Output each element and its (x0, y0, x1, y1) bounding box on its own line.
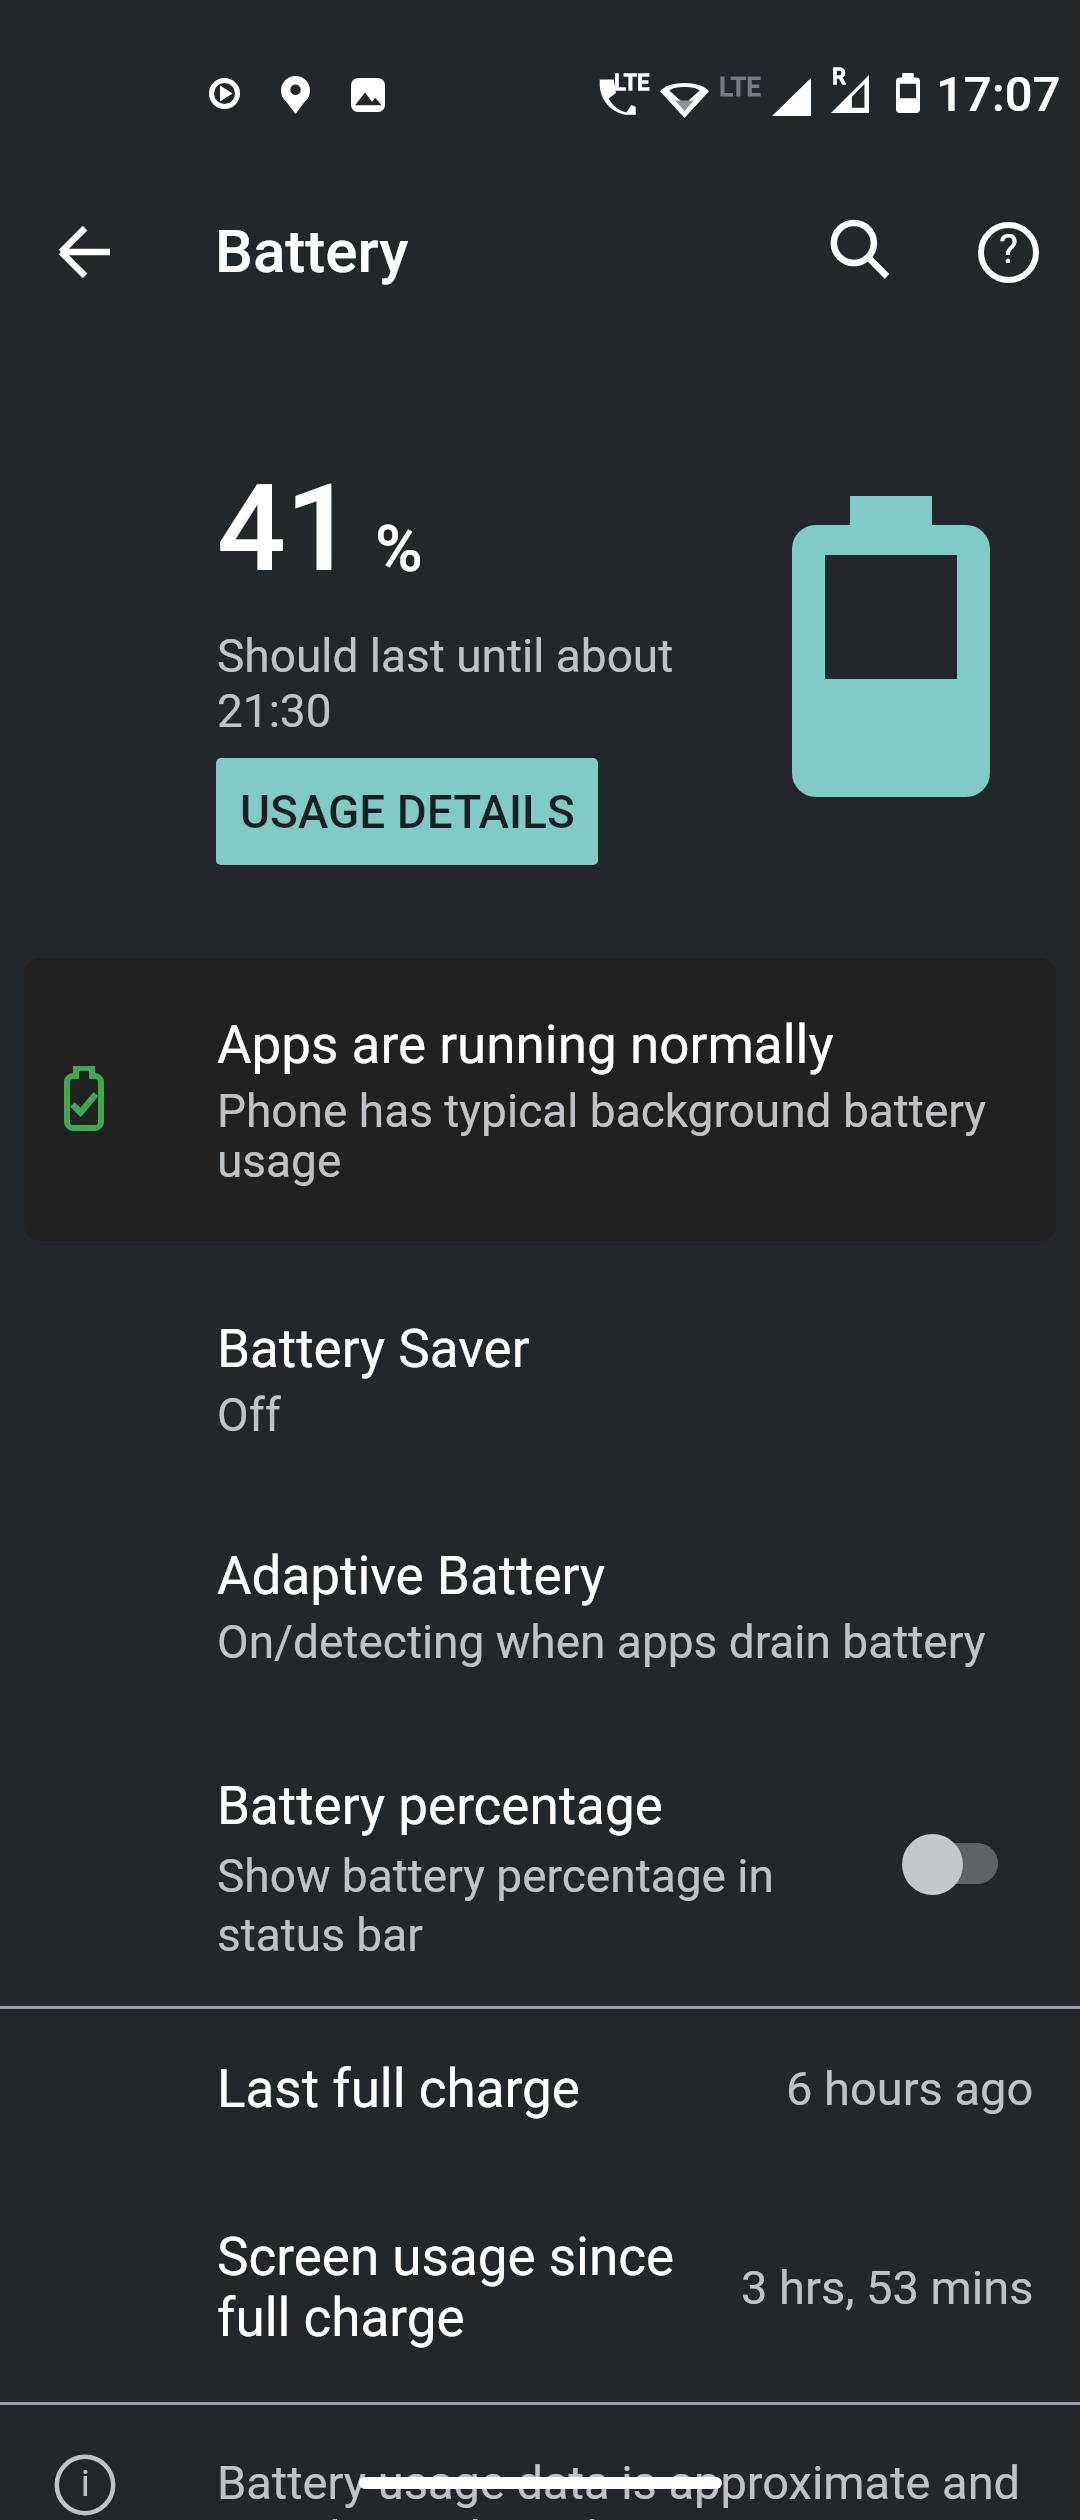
staticText: R (832, 64, 846, 90)
staticText: 6 hours ago (786, 2061, 1034, 2116)
staticText: Battery usage data is approximate and ca… (217, 2455, 1021, 2520)
button[interactable]: Apps are running normally (24, 958, 1056, 1241)
staticText: Adaptive Battery (217, 1545, 606, 1607)
button[interactable]: USAGE DETAILS (216, 758, 598, 865)
staticText: 3 hrs, 53 mins (741, 2260, 1034, 2315)
staticText: Off (217, 1388, 281, 1442)
button[interactable]: Help (952, 196, 1064, 308)
staticText: Apps are running normally (217, 1014, 834, 1076)
button[interactable]: Back (28, 196, 140, 308)
button[interactable]: Adaptive Battery (0, 1545, 1080, 1735)
staticText: LTE (614, 70, 650, 96)
button[interactable]: Battery Saver (0, 1318, 1080, 1508)
staticText: Should last until about 21:30 (217, 629, 674, 738)
staticText: ? (999, 226, 1018, 273)
button[interactable]: Search (806, 196, 918, 308)
staticText: 17:07 (936, 66, 1061, 123)
staticText: Last full charge (217, 2058, 580, 2120)
staticText: Phone has typical background battery usa… (217, 1084, 987, 1189)
staticText: USAGE DETAILS (240, 785, 575, 839)
staticText: On/detecting when apps drain battery (217, 1615, 986, 1669)
staticText: 41 (217, 458, 355, 600)
staticText: Battery (215, 216, 409, 286)
staticText: Screen usage since full charge (217, 2226, 675, 2349)
button[interactable]: Battery percentage (0, 1775, 1080, 1965)
button[interactable]: Last full charge (0, 2009, 1080, 2184)
staticText: Show battery percentage in status bar (217, 1849, 774, 1962)
staticText: % (375, 511, 423, 587)
button[interactable]: Screen usage since full charge (0, 2184, 1080, 2402)
staticText: Battery Saver (217, 1318, 530, 1380)
staticText: LTE (719, 72, 761, 102)
staticText: i (81, 2463, 90, 2505)
staticText: Battery percentage (217, 1775, 663, 1837)
